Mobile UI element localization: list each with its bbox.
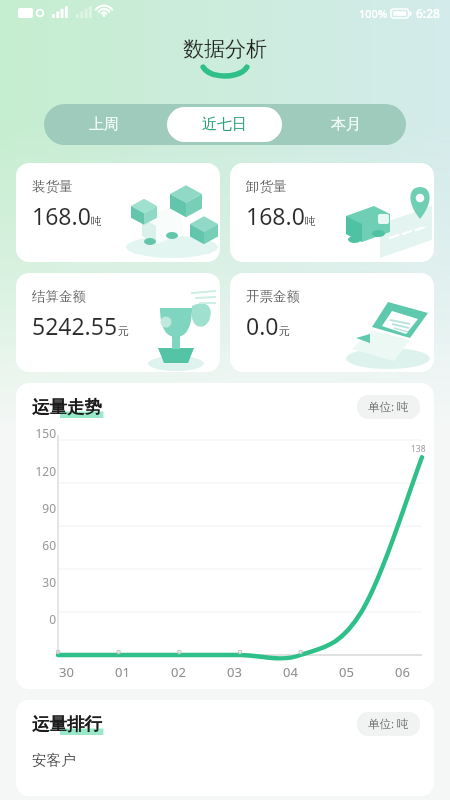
staticText: 100%	[359, 6, 388, 21]
staticText: 运量排行	[32, 713, 102, 735]
staticText: 30	[59, 663, 74, 681]
staticText: 30	[22, 574, 56, 590]
staticText: 本月	[331, 115, 361, 134]
staticText: 02	[171, 663, 186, 681]
button[interactable]: 开票金额	[230, 273, 434, 372]
staticText: 元	[279, 324, 290, 338]
button[interactable]: 单位: 吨	[357, 395, 420, 419]
staticText: 运量走势	[32, 396, 102, 418]
button[interactable]: 单位: 吨	[357, 712, 420, 736]
staticText: 0.0	[246, 310, 279, 341]
button[interactable]: 上周	[47, 107, 161, 142]
button[interactable]: 卸货量	[230, 163, 434, 262]
staticText: 6:28	[416, 5, 440, 21]
staticText: 01	[115, 663, 130, 681]
staticText: 90	[22, 500, 56, 516]
staticText: 数据分析	[183, 36, 267, 62]
staticText: 168.0	[246, 200, 305, 231]
staticText: 138	[411, 443, 426, 455]
staticText: 卸货量	[246, 178, 287, 195]
staticText: 5242.55	[32, 310, 118, 341]
staticText: 结算金额	[32, 288, 86, 305]
staticText: 近七日	[202, 115, 247, 134]
staticText: 运量走势	[32, 396, 102, 418]
staticText: 装货量	[32, 178, 73, 195]
staticText: 元	[118, 324, 129, 338]
button[interactable]: 近七日	[167, 107, 282, 142]
staticText: 安客户	[32, 751, 76, 769]
staticText: 03	[227, 663, 242, 681]
button[interactable]: 本月	[288, 107, 403, 142]
staticText: 05	[339, 663, 354, 681]
staticText: 吨	[305, 214, 316, 228]
staticText: 单位: 吨	[368, 399, 409, 415]
staticText: 120	[22, 463, 56, 479]
staticText: 150	[22, 425, 56, 441]
staticText: 0	[22, 611, 56, 627]
staticText: 168.0	[32, 200, 91, 231]
button[interactable]: 装货量	[16, 163, 220, 262]
staticText: 60	[22, 537, 56, 553]
staticText: 04	[283, 663, 298, 681]
staticText: 06	[395, 663, 410, 681]
staticText: 开票金额	[246, 288, 300, 305]
button[interactable]: 结算金额	[16, 273, 220, 372]
staticText: 上周	[89, 115, 119, 134]
staticText: 运量排行	[32, 713, 102, 735]
staticText: 单位: 吨	[368, 716, 409, 732]
staticText: 吨	[91, 214, 102, 228]
